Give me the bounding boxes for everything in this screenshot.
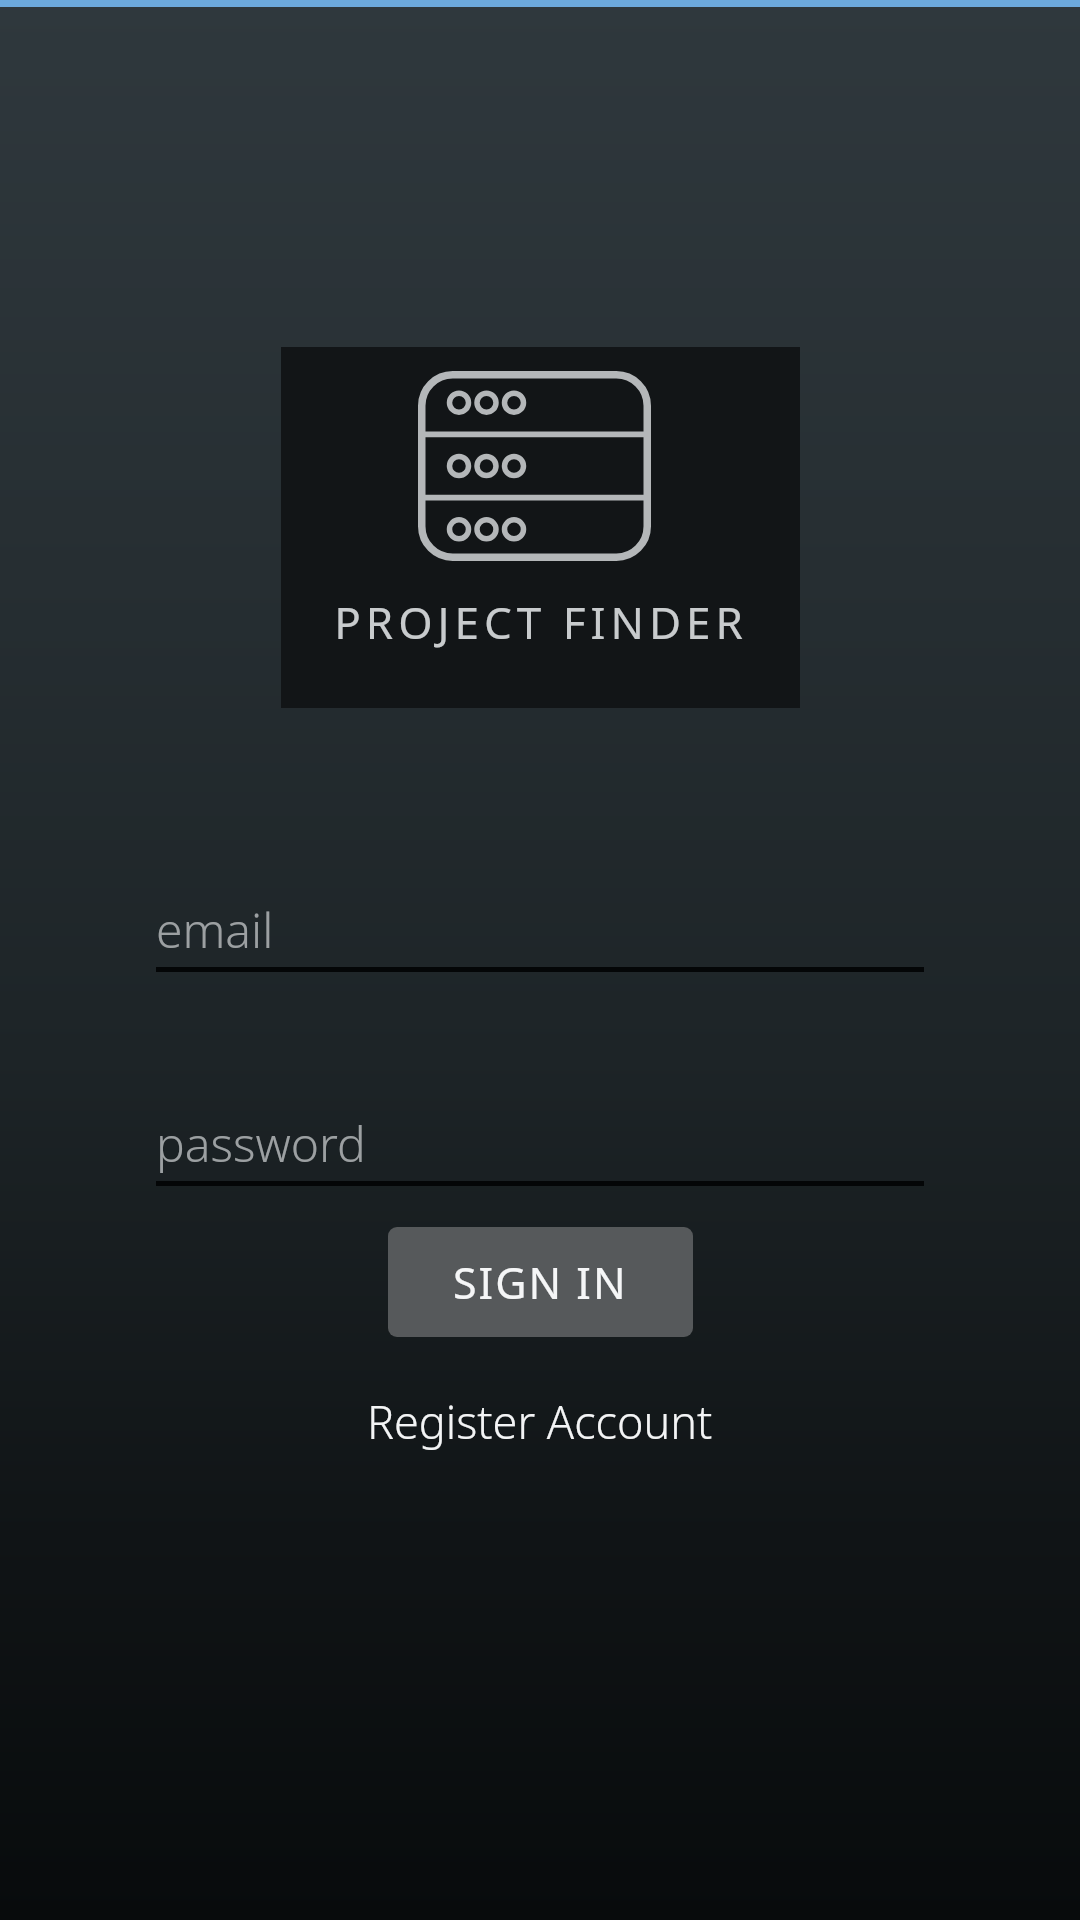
button[interactable]: email <box>156 872 924 972</box>
button[interactable]: Register Account <box>343 1379 737 1464</box>
staticText: Register Account <box>367 1391 713 1452</box>
staticText: SIGN IN <box>453 1253 628 1312</box>
other: Project Finder logo <box>281 347 800 708</box>
staticText: password <box>156 1111 366 1176</box>
staticText: PROJECT FINDER <box>334 592 748 652</box>
button[interactable]: SIGN IN <box>388 1227 693 1337</box>
button[interactable]: password <box>156 1086 924 1186</box>
staticText: email <box>156 897 274 962</box>
